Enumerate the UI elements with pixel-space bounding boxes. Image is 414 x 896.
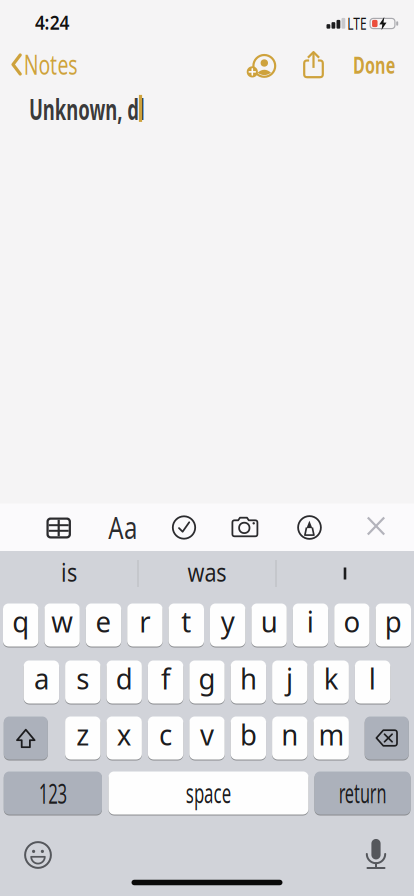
staticText: l [369, 658, 377, 697]
staticText: v [199, 714, 214, 753]
button[interactable]: q [3, 602, 38, 647]
button[interactable]: return [314, 770, 410, 815]
button[interactable]: j [272, 659, 307, 704]
button[interactable]: h [231, 659, 266, 704]
button[interactable]: z [65, 715, 100, 760]
button[interactable]: p [376, 602, 411, 647]
button[interactable]: m [313, 715, 349, 760]
button[interactable]: s [65, 659, 100, 704]
button[interactable]: Notes [0, 42, 100, 86]
button[interactable]: l [355, 659, 390, 704]
button[interactable]: i [293, 602, 328, 647]
staticText: a [33, 658, 49, 697]
staticText: Aa [104, 507, 141, 547]
staticText: 123 [30, 776, 75, 811]
staticText: r [139, 601, 151, 640]
staticText: z [76, 714, 90, 753]
button[interactable]: is [1, 551, 137, 596]
staticText: w [51, 601, 74, 640]
button[interactable] [4, 715, 48, 760]
button[interactable] [354, 836, 398, 880]
staticText: return [323, 775, 401, 811]
button[interactable] [37, 506, 81, 550]
button[interactable] [277, 551, 413, 596]
button[interactable]: g [189, 659, 225, 704]
button[interactable]: n [272, 715, 307, 760]
button[interactable] [162, 505, 206, 549]
staticText: g [198, 658, 216, 697]
button[interactable]: y [210, 602, 245, 647]
staticText: 4:24 [32, 9, 71, 35]
staticText: o [343, 601, 361, 640]
staticText: space [172, 775, 244, 811]
button[interactable]: x [106, 715, 142, 760]
button[interactable] [223, 505, 267, 549]
staticText: h [239, 658, 257, 697]
staticText: n [281, 714, 299, 753]
button[interactable]: 123 [4, 770, 102, 815]
button[interactable]: was [139, 551, 275, 596]
button[interactable] [16, 833, 60, 877]
staticText: c [159, 714, 173, 753]
button[interactable] [291, 44, 335, 88]
button[interactable] [287, 505, 331, 549]
staticText: b [239, 714, 257, 753]
staticText: was [184, 555, 230, 589]
staticText: m [318, 714, 345, 753]
staticText: q [12, 601, 30, 640]
staticText: i [306, 601, 314, 640]
button[interactable] [365, 715, 409, 760]
staticText: d [115, 658, 133, 697]
staticText: k [323, 658, 339, 697]
button[interactable]: Done [336, 42, 412, 86]
button[interactable]: u [251, 602, 287, 647]
button[interactable]: w [44, 602, 80, 647]
staticText: p [384, 601, 402, 640]
button[interactable]: o [334, 602, 370, 647]
staticText: Notes [24, 47, 98, 82]
button[interactable]: b [231, 715, 266, 760]
staticText: is [59, 555, 78, 589]
button[interactable]: k [313, 659, 349, 704]
button[interactable]: e [86, 602, 121, 647]
staticText: j [286, 658, 294, 697]
button[interactable]: r [127, 602, 163, 647]
button[interactable]: t [169, 602, 204, 647]
button[interactable] [354, 504, 398, 548]
button[interactable] [239, 44, 283, 88]
staticText: x [116, 714, 132, 753]
staticText: y [220, 601, 235, 640]
button[interactable]: Aa [101, 505, 145, 549]
button[interactable]: c [148, 715, 183, 760]
staticText: u [260, 601, 278, 640]
staticText: f [161, 658, 171, 697]
button[interactable]: a [24, 659, 59, 704]
button[interactable]: f [148, 659, 183, 704]
staticText: Done [342, 49, 405, 80]
staticText: Unknown, dl [29, 89, 213, 128]
staticText: s [76, 658, 90, 697]
staticText: t [181, 601, 192, 640]
button[interactable]: v [189, 715, 225, 760]
staticText: e [95, 601, 112, 640]
staticText: LTE [344, 13, 370, 34]
button[interactable]: d [106, 659, 142, 704]
button[interactable]: space [108, 770, 308, 815]
